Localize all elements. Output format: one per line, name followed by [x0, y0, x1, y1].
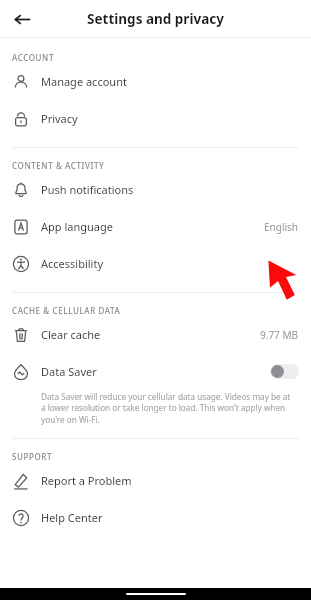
staticText: Settings and privacy [87, 10, 224, 28]
button[interactable]: Data Saver [0, 353, 311, 390]
staticText: CACHE & CELLULAR DATA [12, 305, 121, 316]
staticText: Clear cache [41, 327, 101, 342]
button[interactable]: Clear cache [0, 316, 311, 353]
staticText: 9.77 MB [260, 328, 299, 342]
button[interactable]: Report a Problem [0, 462, 311, 499]
button[interactable]: App language [0, 208, 311, 245]
button[interactable]: Accessibility [0, 245, 311, 282]
staticText: Accessibility [41, 256, 104, 271]
staticText: Data Saver will reduce your cellular dat… [41, 391, 297, 426]
staticText: Help Center [41, 510, 103, 525]
staticText: English [264, 220, 299, 234]
button[interactable]: Manage account [0, 63, 311, 100]
button[interactable]: Back [8, 5, 36, 33]
staticText: Report a Problem [41, 473, 132, 488]
staticText: ACCOUNT [12, 52, 54, 63]
button[interactable]: Data Saver toggle [270, 364, 299, 379]
button[interactable]: Help Center [0, 499, 311, 536]
staticText: SUPPORT [12, 451, 53, 462]
staticText: CONTENT & ACTIVITY [12, 160, 105, 171]
staticText: Privacy [41, 111, 78, 126]
staticText: Data Saver [41, 364, 97, 379]
staticText: Push notifications [41, 182, 134, 197]
button[interactable]: Push notifications [0, 171, 311, 208]
button[interactable]: Privacy [0, 100, 311, 137]
staticText: Manage account [41, 74, 127, 89]
staticText: App language [41, 219, 113, 234]
